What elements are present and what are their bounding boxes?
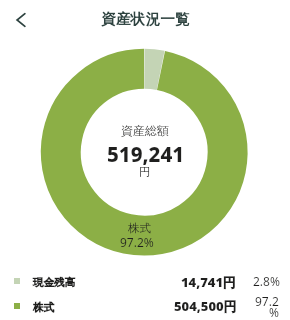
button[interactable]	[0, 295, 290, 320]
staticText: 97.2%	[120, 234, 154, 250]
button[interactable]	[0, 271, 290, 296]
staticText: %	[269, 304, 279, 320]
button[interactable]: Back	[6, 5, 36, 35]
staticText: 519,241	[107, 140, 185, 168]
staticText: 97.2	[255, 293, 279, 309]
staticText: 資産状況一覧	[101, 10, 190, 28]
staticText: 現金残高	[33, 276, 75, 289]
staticText: 資産総額	[121, 123, 169, 138]
staticText: 2.8%	[253, 273, 280, 289]
staticText: 株式	[128, 221, 151, 235]
staticText: 株式	[33, 301, 54, 314]
staticText: 14,741円	[181, 273, 237, 291]
staticText: 円	[139, 165, 151, 179]
staticText: 504,500円	[174, 297, 237, 315]
